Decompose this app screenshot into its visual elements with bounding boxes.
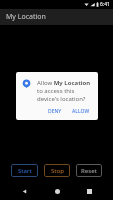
staticText: Allow My Location to access this device'… — [37, 79, 91, 103]
staticText: ALLOW — [72, 108, 90, 115]
button[interactable]: Start — [11, 164, 38, 177]
button[interactable]: Back — [15, 183, 33, 200]
button[interactable]: Stop — [44, 164, 70, 177]
button[interactable]: Recent apps — [80, 183, 98, 200]
staticText: My Location — [6, 12, 46, 22]
button[interactable]: ALLOW — [68, 106, 94, 117]
button[interactable]: Home — [48, 183, 66, 200]
button[interactable]: Reset — [76, 164, 102, 177]
staticText: Stop — [51, 167, 64, 175]
staticText: Reset — [81, 167, 97, 175]
staticText: DENY — [48, 108, 62, 115]
staticText: Start — [18, 167, 32, 175]
button[interactable]: DENY — [44, 106, 66, 117]
staticText: 6:41 — [100, 1, 110, 8]
